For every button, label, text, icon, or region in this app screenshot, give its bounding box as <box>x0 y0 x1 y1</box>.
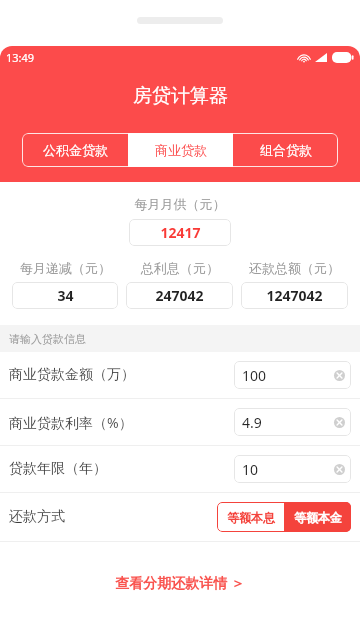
button[interactable]: Clear <box>333 463 345 475</box>
staticText: 商业贷款金额（万） <box>9 366 135 384</box>
staticText: 查看分期还款详情 ＞ <box>115 573 245 592</box>
button[interactable]: Clear <box>333 416 345 428</box>
staticText: 还款总额（元） <box>249 260 340 276</box>
button[interactable]: 组合贷款 <box>233 133 338 167</box>
staticText: 请输入贷款信息 <box>9 332 86 346</box>
button[interactable]: 公积金贷款 <box>22 133 128 167</box>
button[interactable]: 等额本金 <box>284 502 351 532</box>
staticText: 等额本息 <box>227 510 275 525</box>
staticText: 每月递减（元） <box>20 260 111 276</box>
staticText: 商业贷款 <box>155 142 207 158</box>
staticText: 还款方式 <box>9 508 65 526</box>
staticText: 1247042 <box>266 286 323 305</box>
button[interactable]: 贷款年限（年） <box>0 446 360 492</box>
staticText: 等额本金 <box>294 510 342 525</box>
staticText: 贷款年限（年） <box>9 460 107 478</box>
staticText: 247042 <box>155 286 204 305</box>
staticText: 公积金贷款 <box>43 142 108 158</box>
staticText: 每月月供（元） <box>0 196 360 212</box>
staticText: 100 <box>242 366 267 385</box>
staticText: 总利息（元） <box>141 260 219 276</box>
button[interactable]: 商业贷款金额（万） <box>0 352 360 398</box>
button[interactable]: 商业贷款利率（%） <box>0 399 360 445</box>
staticText: 4.9 <box>242 413 262 432</box>
staticText: 商业贷款利率（%） <box>9 413 133 432</box>
button[interactable]: 商业贷款 <box>128 133 233 167</box>
staticText: 12417 <box>160 223 201 242</box>
staticText: 34 <box>57 286 74 305</box>
staticText: 10 <box>242 460 259 479</box>
button[interactable]: 查看分期还款详情 ＞ <box>0 567 360 597</box>
staticText: 组合贷款 <box>260 142 312 158</box>
button[interactable]: 等额本息 <box>217 502 284 532</box>
staticText: 13:49 <box>6 50 35 65</box>
button[interactable]: Clear <box>333 369 345 381</box>
staticText: 房贷计算器 <box>133 84 228 108</box>
